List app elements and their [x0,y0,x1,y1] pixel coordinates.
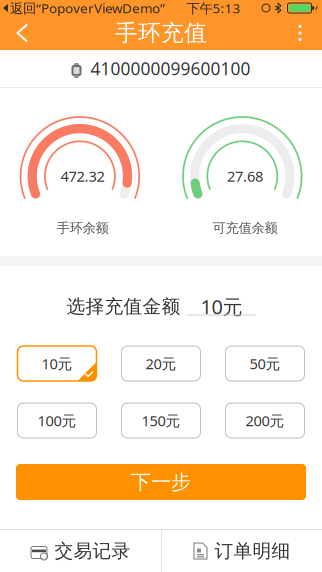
staticText: 交易记录 [54,539,130,562]
staticText: 4100000099600100 [90,57,250,80]
staticText: 手环余额 [56,220,108,236]
staticText: 订单明细 [214,539,290,562]
staticText: 下午5:13 [186,0,240,17]
staticText: 20元 [145,354,176,373]
staticText: 10元 [200,293,242,320]
button[interactable]: 20元 [121,346,200,381]
staticText: 472.32 [60,166,104,186]
button[interactable]: 100元 [17,403,96,438]
button[interactable]: 订单明细 [162,530,322,572]
button[interactable]: Back [0,16,44,50]
button[interactable]: 150元 [121,403,200,438]
staticText: 返回“PopoverViewDemo” [10,0,165,17]
button[interactable]: 交易记录 [0,530,161,572]
staticText: 下一步 [131,470,191,494]
staticText: 27.68 [227,166,263,186]
staticText: 可充值余额 [212,220,277,236]
button[interactable]: More options [278,16,322,50]
staticText: 200元 [245,411,284,430]
button[interactable]: 10元 [17,346,96,381]
staticText: 手环充值 [115,19,207,47]
staticText: 选择充值金额 [66,295,180,318]
button[interactable]: 50元 [225,346,304,381]
staticText: 10元 [41,354,72,373]
staticText: 150元 [141,411,180,430]
staticText: 50元 [249,354,280,373]
button[interactable]: 下一步 [16,464,306,500]
button[interactable]: 200元 [225,403,304,438]
staticText: 100元 [37,411,76,430]
